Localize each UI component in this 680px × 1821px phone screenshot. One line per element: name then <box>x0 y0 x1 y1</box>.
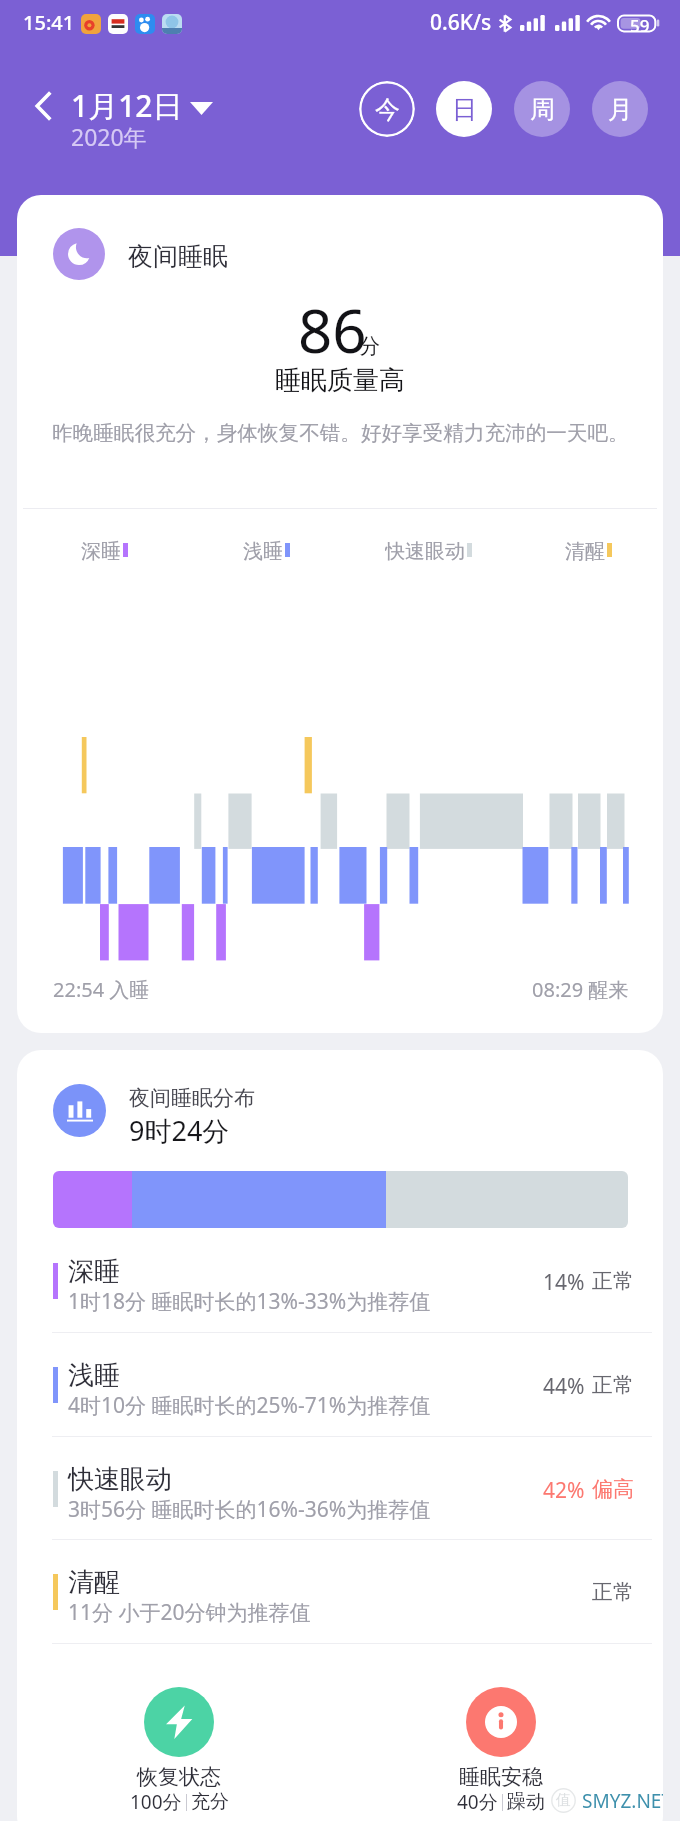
staticText: 9时24分 <box>129 1112 230 1149</box>
staticText: 充分 <box>191 1790 229 1814</box>
staticText: 22:54 入睡 <box>53 976 150 1003</box>
staticText: 睡眠安稳 <box>459 1764 543 1790</box>
staticText: 昨晚睡眠很充分，身体恢复不错。好好享受精力充沛的一天吧。 <box>52 420 629 446</box>
staticText: 恢复状态 <box>137 1764 221 1790</box>
staticText: 40分 <box>457 1789 498 1815</box>
staticText: 1时18分 睡眠时长的13%-33%为推荐值 <box>68 1287 431 1316</box>
staticText: 深睡 <box>68 1255 120 1288</box>
staticText: 睡眠质量高 <box>275 364 405 397</box>
staticText: 夜间睡眠 <box>128 241 228 272</box>
staticText: 86 <box>298 289 367 371</box>
button[interactable]: 清醒 <box>17 1539 663 1643</box>
staticText: 躁动 <box>507 1790 545 1814</box>
button[interactable]: Back <box>24 84 64 128</box>
button[interactable]: 浅睡 <box>17 1332 663 1436</box>
staticText: 15:41 <box>23 9 75 36</box>
staticText: 分 <box>359 333 380 359</box>
button[interactable]: 睡眠安稳 <box>401 1687 601 1821</box>
staticText: 浅睡 <box>243 539 283 561</box>
staticText: 快速眼动 <box>385 539 465 561</box>
staticText: 深睡 <box>81 539 121 561</box>
staticText: 1月12日 <box>71 85 183 126</box>
staticText: 周 <box>530 94 555 125</box>
staticText: 快速眼动 <box>68 1463 172 1496</box>
button[interactable]: 深睡 <box>17 1228 663 1332</box>
staticText: 44% <box>543 1372 585 1401</box>
button[interactable]: 月 <box>592 81 648 137</box>
staticText: 浅睡 <box>68 1359 120 1392</box>
staticText: 正常 <box>592 1268 634 1294</box>
staticText: 正常 <box>592 1372 634 1398</box>
staticText: 夜间睡眠分布 <box>129 1085 255 1111</box>
button[interactable]: 快速眼动 <box>17 1436 663 1540</box>
staticText: 偏高 <box>592 1476 634 1502</box>
staticText: 11分 小于20分钟为推荐值 <box>68 1598 311 1627</box>
staticText: 100分 <box>130 1789 182 1815</box>
staticText: 42% <box>543 1476 585 1505</box>
staticText: 日 <box>452 94 477 125</box>
staticText: 0.6K/s <box>430 8 492 37</box>
staticText: SMYZ.NET <box>582 1788 663 1814</box>
staticText: 14% <box>543 1268 585 1297</box>
staticText: 59 <box>630 14 650 32</box>
button[interactable]: 日 <box>436 81 492 137</box>
button[interactable]: 今 <box>359 81 415 137</box>
staticText: 2020年 <box>71 121 147 152</box>
staticText: 月 <box>608 94 633 125</box>
button[interactable]: 周 <box>514 81 570 137</box>
staticText: 清醒 <box>68 1566 120 1599</box>
staticText: 正常 <box>592 1579 634 1605</box>
button[interactable]: 1月12日 <box>72 84 222 149</box>
staticText: 今 <box>375 94 400 125</box>
staticText: 清醒 <box>565 539 605 561</box>
button[interactable]: 恢复状态 <box>79 1687 279 1821</box>
staticText: 4时10分 睡眠时长的25%-71%为推荐值 <box>68 1391 431 1420</box>
staticText: 3时56分 睡眠时长的16%-36%为推荐值 <box>68 1495 431 1524</box>
staticText: 值 <box>556 1791 571 1810</box>
staticText: 08:29 醒来 <box>532 976 629 1003</box>
